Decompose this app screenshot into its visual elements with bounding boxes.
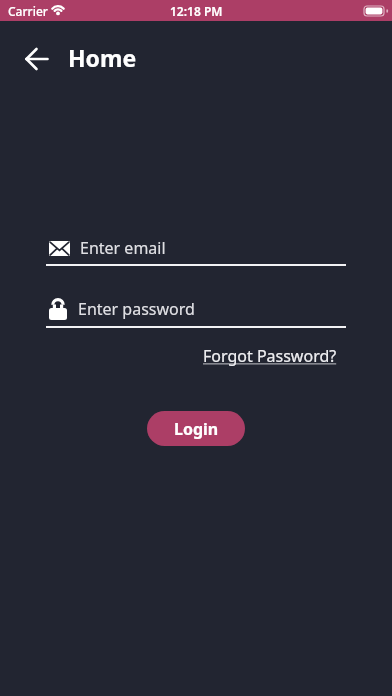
staticText: 12:18 PM xyxy=(170,3,223,19)
button[interactable]: Forgot Password? xyxy=(203,345,337,367)
staticText: Home xyxy=(68,42,137,73)
button[interactable]: Login xyxy=(147,411,245,446)
staticText: Login xyxy=(174,418,219,440)
staticText: Carrier xyxy=(8,3,48,19)
staticText: Forgot Password? xyxy=(203,345,337,367)
staticText: Enter password xyxy=(78,298,195,320)
staticText: Enter email xyxy=(80,237,166,259)
button[interactable] xyxy=(13,35,61,83)
